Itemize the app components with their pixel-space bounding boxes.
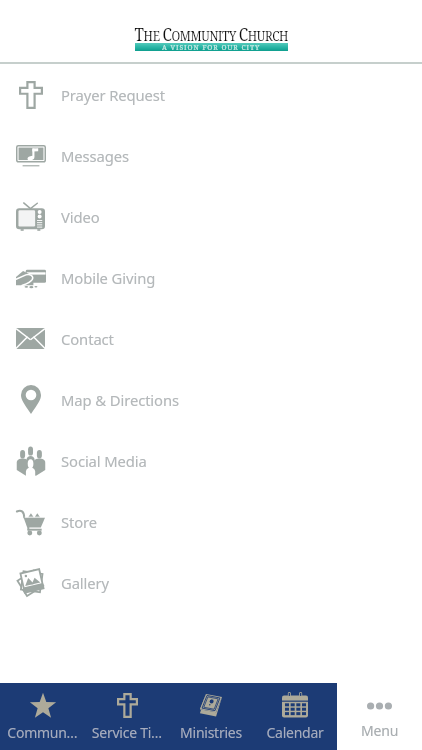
staticText: Community <box>6 723 79 742</box>
staticText: Store <box>61 512 98 532</box>
staticText: Ministries <box>180 723 242 742</box>
button[interactable]: Social Media <box>0 430 422 491</box>
button[interactable]: Service Times <box>85 683 169 750</box>
staticText: Service Times <box>91 723 163 742</box>
staticText: THE COMMUNITY CHURCH <box>135 22 288 47</box>
staticText: Contact <box>61 329 114 349</box>
button[interactable]: Gallery <box>0 552 422 613</box>
staticText: Gallery <box>61 573 110 593</box>
button[interactable]: Menu <box>337 683 422 750</box>
button[interactable]: Ministries <box>169 683 253 750</box>
button[interactable]: Calendar <box>253 683 337 750</box>
button[interactable]: Messages <box>0 125 422 186</box>
button[interactable]: Prayer Request <box>0 64 422 125</box>
staticText: Calendar <box>266 723 324 742</box>
staticText: Mobile Giving <box>61 268 156 288</box>
button[interactable]: Store <box>0 491 422 552</box>
staticText: Map & Directions <box>61 390 179 410</box>
staticText: Messages <box>61 146 129 166</box>
button[interactable]: Video <box>0 186 422 247</box>
button[interactable]: Map & Directions <box>0 369 422 430</box>
staticText: A VISION FOR OUR CITY <box>162 43 261 51</box>
staticText: Prayer Request <box>61 85 166 105</box>
button[interactable]: Community <box>0 683 85 750</box>
staticText: Social Media <box>61 451 147 471</box>
staticText: Video <box>61 207 100 227</box>
button[interactable]: Mobile Giving <box>0 247 422 308</box>
button[interactable]: Contact <box>0 308 422 369</box>
staticText: Menu <box>361 721 399 740</box>
